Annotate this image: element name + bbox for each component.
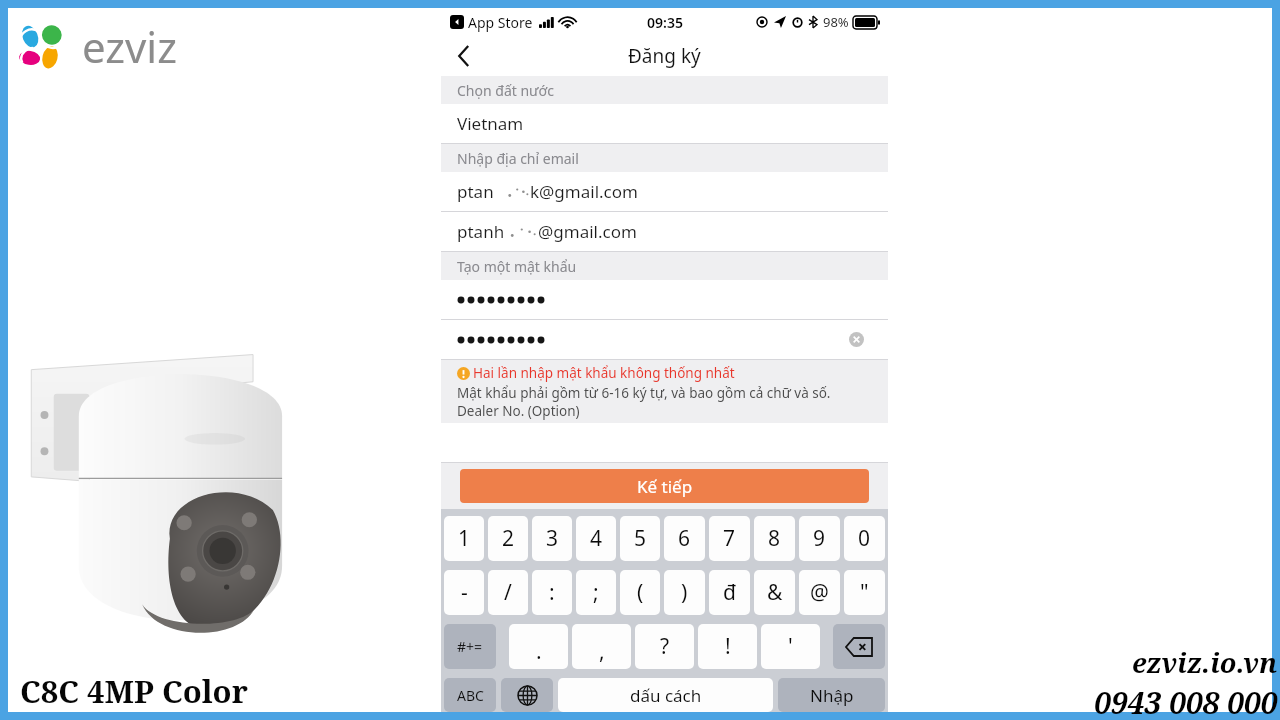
staticText: 4 [590, 524, 603, 553]
button[interactable]: 7 [709, 516, 750, 561]
staticText: ABC [457, 686, 484, 705]
staticText: Vietnam [457, 112, 524, 135]
button[interactable]: . [509, 624, 568, 669]
staticText: Nhập [810, 684, 854, 707]
staticText: ptanh [457, 220, 505, 243]
staticText: Tạo một mật khẩu [457, 257, 577, 276]
button[interactable]: dấu cách [558, 678, 773, 712]
staticText: - [461, 578, 468, 607]
staticText: & [767, 578, 783, 607]
button[interactable]: Kế tiếp [460, 469, 869, 503]
button[interactable]: ) [664, 570, 705, 615]
staticText: ? [660, 632, 670, 661]
button[interactable]: ptanh [441, 212, 888, 251]
button[interactable]: ABC [444, 678, 496, 712]
staticText: Dealer No. (Option) [457, 402, 580, 420]
button[interactable]: Back [441, 36, 487, 76]
staticText: 1 [458, 524, 471, 553]
button[interactable]: 3 [532, 516, 572, 561]
staticText: " [860, 578, 869, 607]
staticText: ' [788, 632, 793, 661]
staticText: dấu cách [630, 684, 702, 707]
button[interactable]: ptan [441, 172, 888, 211]
button[interactable]: ; [576, 570, 616, 615]
staticText: ( [637, 578, 644, 607]
button[interactable]: 6 [664, 516, 705, 561]
staticText: Đăng ký [628, 43, 701, 69]
button[interactable]: & [754, 570, 795, 615]
staticText: 5 [634, 524, 647, 553]
button[interactable]: Change keyboard [501, 678, 553, 712]
button[interactable]: 2 [488, 516, 528, 561]
button[interactable]: " [844, 570, 885, 615]
button[interactable]: / [488, 570, 528, 615]
staticText: k@gmail.com [530, 180, 638, 203]
staticText: #+= [457, 637, 483, 656]
button[interactable]: @ [799, 570, 840, 615]
button[interactable]: 5 [620, 516, 660, 561]
staticText: 98% [823, 13, 849, 31]
button[interactable]: ' [761, 624, 820, 669]
staticText: C8C 4MP Color [20, 670, 248, 712]
button[interactable]: 1 [444, 516, 484, 561]
staticText: @gmail.com [538, 220, 637, 243]
staticText: 2 [502, 524, 515, 553]
staticText: 0943 008 000 [1094, 682, 1278, 720]
staticText: 9 [813, 524, 826, 553]
staticText: Nhập địa chỉ email [457, 149, 579, 168]
staticText: @ [810, 578, 829, 607]
staticText: Mật khẩu phải gồm từ 6-16 ký tự, và bao … [457, 384, 831, 402]
staticText: App Store [468, 13, 533, 32]
staticText: ! [725, 632, 731, 661]
staticText: ; [593, 578, 599, 607]
button[interactable] [441, 320, 888, 359]
button[interactable]: : [532, 570, 572, 615]
staticText: 09:35 [647, 13, 683, 32]
staticText: . [536, 637, 542, 666]
staticText: ptan [457, 180, 494, 203]
button[interactable]: ? [635, 624, 694, 669]
staticText: Kế tiếp [637, 475, 693, 498]
button[interactable]: Backspace [833, 624, 885, 669]
button[interactable] [441, 280, 888, 319]
button[interactable]: - [444, 570, 484, 615]
staticText: / [504, 578, 512, 607]
staticText: ezviz [82, 18, 177, 75]
button[interactable]: 8 [754, 516, 795, 561]
button[interactable]: 9 [799, 516, 840, 561]
button[interactable]: Vietnam [441, 104, 888, 143]
button[interactable]: 0 [844, 516, 885, 561]
button[interactable]: 4 [576, 516, 616, 561]
staticText: 3 [546, 524, 559, 553]
staticText: ) [681, 578, 688, 607]
staticText: Chọn đất nước [457, 81, 554, 100]
staticText: ezviz.io.vn [1132, 644, 1278, 681]
button[interactable]: ( [620, 570, 660, 615]
button[interactable]: , [572, 624, 631, 669]
staticText: 8 [768, 524, 781, 553]
button[interactable]: Nhập [778, 678, 885, 712]
staticText: Hai lần nhập mật khẩu không thống nhất [473, 364, 735, 382]
button[interactable]: Clear text [849, 332, 864, 347]
button[interactable]: đ [709, 570, 750, 615]
button[interactable]: ! [698, 624, 757, 669]
staticText: đ [723, 578, 736, 607]
staticText: 7 [723, 524, 736, 553]
staticText: : [549, 578, 555, 607]
button[interactable]: #+= [444, 624, 496, 669]
staticText: , [599, 637, 605, 666]
staticText: 6 [678, 524, 691, 553]
staticText: 0 [858, 524, 871, 553]
